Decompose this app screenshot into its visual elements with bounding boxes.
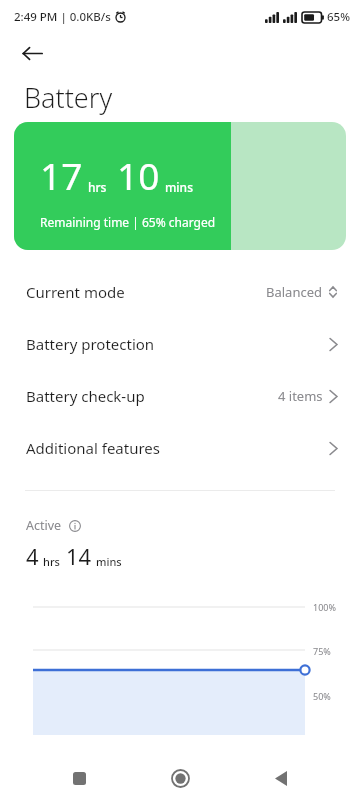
staticText: mins bbox=[96, 554, 122, 569]
staticText: Battery protection bbox=[26, 334, 155, 354]
staticText: Current mode bbox=[26, 282, 125, 302]
staticText: 10 bbox=[117, 150, 160, 200]
staticText: 17 bbox=[40, 150, 83, 200]
staticText: Battery bbox=[24, 79, 113, 116]
staticText: Battery check-up bbox=[26, 386, 145, 406]
staticText: 4 items bbox=[278, 387, 323, 405]
staticText: hrs bbox=[43, 554, 60, 569]
staticText: 50% bbox=[313, 690, 331, 702]
staticText: 14 bbox=[66, 541, 92, 571]
staticText: 75% bbox=[313, 645, 331, 657]
button[interactable]: Battery protection bbox=[0, 318, 360, 370]
button[interactable]: Additional features bbox=[0, 422, 360, 474]
staticText: mins bbox=[165, 179, 193, 195]
button[interactable]: Current mode bbox=[0, 266, 360, 318]
staticText: 100% bbox=[313, 601, 336, 613]
button[interactable]: More info about active time bbox=[68, 519, 82, 533]
staticText: hrs bbox=[88, 179, 107, 195]
button[interactable]: Battery check-up bbox=[0, 370, 360, 422]
staticText: 2:49 PM | 0.0KB/s bbox=[14, 9, 111, 25]
staticText: Remaining time | 65% charged bbox=[40, 214, 216, 230]
staticText: Active bbox=[26, 517, 62, 534]
staticText: Additional features bbox=[26, 438, 160, 458]
button[interactable]: Back bbox=[259, 756, 303, 800]
button[interactable]: Recent apps bbox=[57, 756, 101, 800]
button[interactable]: Home bbox=[158, 756, 202, 800]
button[interactable]: Back bbox=[16, 37, 48, 69]
staticText: 4 bbox=[26, 541, 39, 571]
staticText: 65% bbox=[327, 9, 350, 25]
staticText: Balanced bbox=[266, 283, 322, 301]
button[interactable]: 17 bbox=[14, 122, 346, 250]
